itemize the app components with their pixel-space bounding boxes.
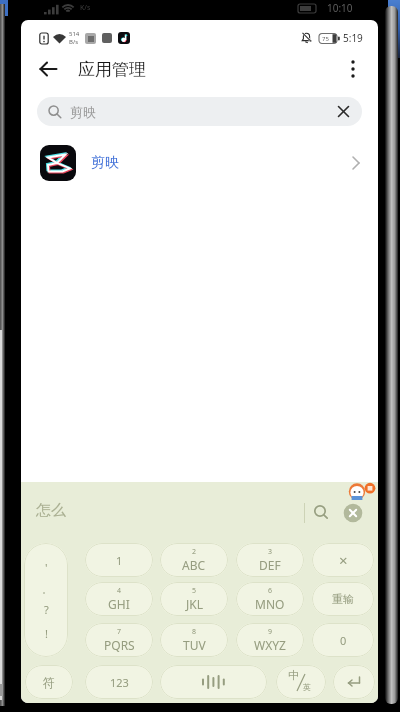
staticText: 7	[117, 627, 122, 637]
staticText: 4	[117, 586, 122, 596]
staticText: !	[45, 626, 48, 641]
staticText: GHI	[108, 596, 130, 612]
staticText: DEF	[259, 557, 281, 573]
staticText: 3	[268, 547, 273, 557]
button[interactable]: '	[24, 543, 68, 657]
staticText: 剪映	[70, 104, 96, 120]
button[interactable]	[343, 503, 363, 523]
button[interactable]	[160, 665, 267, 699]
staticText: ?	[44, 602, 49, 617]
staticText: MNO	[255, 596, 285, 612]
staticText: 75	[322, 35, 329, 43]
staticText: B/s	[69, 38, 79, 46]
button[interactable]: 8	[160, 623, 228, 657]
button[interactable]: ×	[312, 543, 374, 577]
staticText: '	[45, 560, 48, 575]
staticText: 5	[192, 586, 197, 596]
button[interactable]: 符	[25, 665, 73, 699]
button[interactable]: 2	[160, 543, 228, 577]
button[interactable]: 剪映	[21, 143, 378, 183]
button[interactable]: 5	[160, 582, 228, 616]
staticText: K/s	[80, 3, 91, 13]
staticText: 10:10	[327, 1, 353, 15]
button[interactable]: 怎么	[36, 501, 66, 520]
staticText: 9	[268, 627, 273, 637]
staticText: 0	[340, 633, 347, 648]
staticText: 。	[42, 584, 51, 595]
staticText: WXYZ	[254, 637, 286, 653]
button[interactable]: 0	[312, 623, 374, 657]
staticText: TUV	[183, 637, 206, 653]
button[interactable]: 7	[85, 623, 153, 657]
staticText: JKL	[186, 596, 203, 612]
button[interactable]	[313, 504, 330, 521]
staticText: ×	[339, 550, 348, 570]
staticText: 2	[192, 547, 197, 557]
staticText: 514	[69, 30, 80, 38]
button[interactable]	[333, 665, 375, 699]
button[interactable]: 9	[236, 623, 304, 657]
button[interactable]: 中	[276, 665, 326, 699]
button[interactable]: 1	[85, 543, 153, 577]
staticText: 8	[192, 627, 197, 637]
staticText: 重输	[332, 592, 354, 606]
button[interactable]: 6	[236, 582, 304, 616]
staticText: 剪映	[91, 154, 119, 172]
button[interactable]	[337, 105, 350, 118]
staticText: 中	[288, 668, 299, 682]
button[interactable]	[35, 56, 61, 82]
button[interactable]: 重输	[312, 582, 374, 616]
staticText: 6	[268, 586, 273, 596]
button[interactable]: 123	[85, 665, 153, 699]
staticText: 符	[43, 675, 55, 690]
staticText: PQRS	[104, 637, 135, 653]
staticText: 英	[303, 682, 311, 692]
button[interactable]: 3	[236, 543, 304, 577]
button[interactable]: 4	[85, 582, 153, 616]
staticText: 应用管理	[78, 59, 146, 80]
staticText: ABC	[182, 557, 206, 573]
staticText: 123	[110, 675, 129, 690]
button[interactable]	[340, 56, 366, 82]
staticText: 5:19	[343, 31, 363, 45]
button[interactable]: 剪映	[37, 97, 362, 126]
staticText: 1	[116, 553, 123, 568]
